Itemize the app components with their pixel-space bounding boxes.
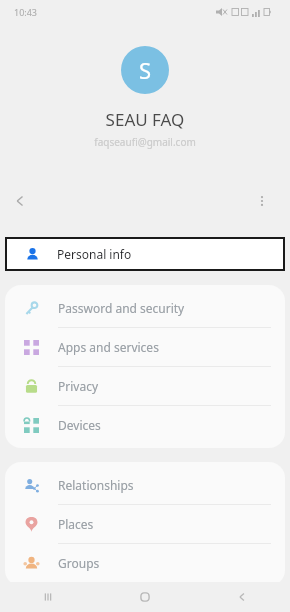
staticText: Places bbox=[58, 516, 94, 532]
button[interactable]: Places bbox=[5, 505, 285, 543]
staticText: Privacy bbox=[58, 378, 99, 394]
button[interactable]: Back bbox=[193, 582, 290, 612]
button[interactable]: Privacy bbox=[5, 367, 285, 405]
button[interactable]: Personal info bbox=[7, 239, 283, 269]
button[interactable]: Password and security bbox=[5, 289, 285, 327]
staticText: Personal info bbox=[57, 246, 132, 262]
button[interactable]: Devices bbox=[5, 406, 285, 444]
button[interactable]: Groups bbox=[5, 544, 285, 582]
button[interactable]: Apps and services bbox=[5, 328, 285, 366]
staticText: S bbox=[139, 55, 152, 85]
staticText: Groups bbox=[58, 555, 100, 571]
button[interactable]: Recents bbox=[0, 582, 96, 612]
button[interactable]: Profile picture bbox=[121, 46, 169, 94]
staticText: Relationships bbox=[58, 477, 134, 493]
button[interactable]: Relationships bbox=[5, 466, 285, 504]
button[interactable]: Home bbox=[96, 582, 193, 612]
staticText: Apps and services bbox=[58, 339, 159, 355]
staticText: SEAU FAQ bbox=[0, 108, 290, 131]
staticText: Devices bbox=[58, 417, 101, 433]
button[interactable]: More options bbox=[242, 181, 282, 221]
staticText: Password and security bbox=[58, 300, 185, 316]
button[interactable]: Back bbox=[0, 181, 40, 221]
staticText: 10:43 bbox=[14, 6, 38, 18]
staticText: faqseaufi@gmail.com bbox=[0, 135, 290, 149]
